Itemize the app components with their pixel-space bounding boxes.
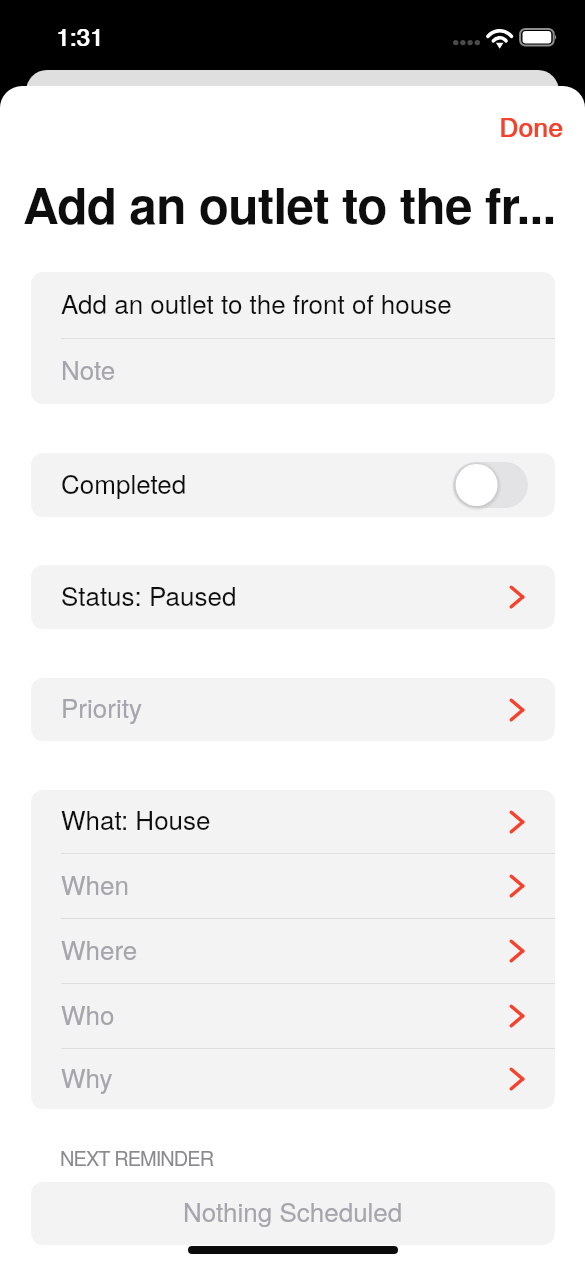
staticText: Status: Paused xyxy=(61,576,237,613)
staticText: When xyxy=(61,865,129,902)
staticText: What: House xyxy=(61,800,211,837)
staticText: Add an outlet to the front of house xyxy=(61,284,452,321)
staticText: Note xyxy=(61,350,116,387)
button[interactable]: Priority xyxy=(31,678,555,741)
staticText: Priority xyxy=(61,688,142,725)
staticText: Done xyxy=(500,107,564,144)
staticText: Where xyxy=(61,930,138,967)
button[interactable]: Nothing Scheduled xyxy=(31,1182,555,1245)
staticText: Why xyxy=(61,1058,113,1095)
staticText: NEXT REMINDER xyxy=(60,1143,214,1172)
button[interactable]: Who xyxy=(31,984,555,1048)
button[interactable]: Where xyxy=(31,919,555,983)
staticText: Done xyxy=(499,107,563,144)
button[interactable]: Status: Paused xyxy=(31,565,555,629)
staticText: 1:31 xyxy=(56,18,104,52)
staticText: Add an outlet to the fr... xyxy=(23,168,556,239)
staticText: 1:31 xyxy=(57,18,105,52)
button[interactable]: Add an outlet to the front of house xyxy=(31,272,555,338)
button[interactable]: Done xyxy=(473,95,585,156)
button[interactable]: Note xyxy=(31,339,555,404)
staticText: Nothing Scheduled xyxy=(183,1192,403,1229)
button[interactable]: Why xyxy=(31,1049,555,1109)
staticText: Who xyxy=(61,995,115,1032)
button[interactable]: Completed toggle xyxy=(453,462,528,508)
button[interactable]: What: House xyxy=(31,790,555,853)
staticText: Completed xyxy=(61,464,187,501)
button[interactable]: When xyxy=(31,854,555,918)
